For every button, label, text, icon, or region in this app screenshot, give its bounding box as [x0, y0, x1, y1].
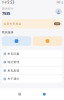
staticText: 会员专享权益	[4, 22, 22, 25]
staticText: 我的服务	[2, 31, 14, 34]
button[interactable]: 常见问题	[2, 50, 62, 57]
staticText: 意见反馈	[8, 69, 20, 72]
staticText: 立即开通	[55, 23, 59, 24]
staticText: 常见问题	[8, 52, 20, 55]
button[interactable]: 关于我们	[2, 75, 62, 83]
button[interactable]: 订单	[2, 36, 31, 46]
staticText: 关于我们	[8, 77, 20, 81]
staticText: 地址管理	[8, 60, 20, 64]
button[interactable]: Profile	[55, 8, 62, 15]
button[interactable]: Me	[39, 89, 49, 100]
button[interactable]: Home	[15, 89, 25, 100]
button[interactable]: 地址管理	[2, 58, 62, 66]
staticText: 下午5:53	[1, 1, 14, 4]
button[interactable]: 意见反馈	[2, 67, 62, 74]
staticText: ••ıl ▯	[56, 1, 62, 4]
button[interactable]: 卡券	[33, 36, 62, 46]
button[interactable]: 会员专享权益	[2, 19, 62, 28]
staticText: 我的积分	[2, 7, 14, 10]
staticText: 7535	[2, 11, 10, 16]
